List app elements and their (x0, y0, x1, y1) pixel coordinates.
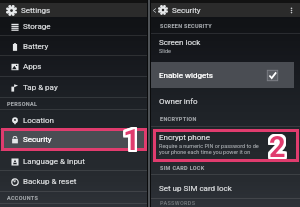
staticText: SCREEN SECURITY (160, 23, 213, 29)
staticText: Security (23, 136, 52, 145)
staticText: ENCRYPTION (160, 116, 197, 122)
staticText: 2 (271, 128, 288, 162)
staticText: 1 (125, 120, 143, 155)
button[interactable]: Back (151, 3, 300, 17)
staticText: Settings (21, 6, 51, 15)
staticText: 1 (121, 122, 139, 157)
staticText: 2 (270, 129, 287, 163)
button[interactable]: Tap & pay (0, 77, 147, 98)
staticText: your phone each time you power it on (159, 149, 251, 155)
staticText: 1 (125, 124, 143, 159)
button[interactable]: Location (0, 110, 147, 131)
staticText: 1 (122, 124, 140, 159)
staticText: Security (23, 135, 52, 144)
button[interactable]: Language & input (0, 151, 147, 172)
staticText: 1 (121, 124, 139, 159)
staticText: Backup & reset (23, 177, 77, 186)
button[interactable]: Settings (0, 3, 147, 17)
staticText: 2 (267, 132, 284, 166)
staticText: 2 (270, 128, 287, 162)
button[interactable]: Apps (0, 56, 147, 77)
staticText: 1 (121, 123, 139, 158)
staticText: Owner info (159, 97, 198, 106)
button[interactable]: Screen lock (151, 35, 300, 60)
staticText: PERSONAL (7, 101, 38, 107)
staticText: 2 (267, 131, 284, 165)
staticText: Apps (23, 62, 42, 71)
staticText: 1 (125, 121, 143, 156)
staticText: 2 (269, 131, 286, 165)
staticText: 2 (270, 132, 287, 166)
staticText: 2 (269, 129, 286, 163)
staticText: SIM CARD LOCK (160, 165, 205, 171)
staticText: Language & input (23, 157, 85, 166)
staticText: 2 (267, 130, 284, 164)
staticText: Location (23, 116, 54, 125)
staticText: 2 (271, 129, 288, 163)
button[interactable]: Battery (0, 36, 147, 57)
staticText: 2 (270, 130, 287, 164)
staticText: 1 (123, 121, 141, 156)
staticText: 2 (267, 128, 284, 162)
staticText: Tap & pay (23, 83, 58, 92)
staticText: 1 (123, 120, 141, 155)
staticText: 2 (268, 130, 285, 164)
staticText: 2 (271, 131, 288, 165)
staticText: 1 (122, 123, 140, 158)
staticText: 2 (268, 132, 285, 166)
staticText: 1 (121, 120, 139, 155)
staticText: 2 (270, 131, 287, 165)
staticText: 2 (268, 129, 285, 163)
staticText: Set up SIM card lock (159, 184, 232, 193)
staticText: 1 (125, 122, 143, 157)
button[interactable]: Owner info (151, 91, 300, 111)
button[interactable]: Backup & reset (0, 171, 147, 192)
staticText: 2 (271, 132, 288, 166)
staticText: Require a numeric PIN or password to de (159, 143, 259, 149)
staticText: 2 (268, 128, 285, 162)
staticText: 1 (123, 123, 141, 158)
staticText: 1 (121, 121, 139, 156)
other: Back (152, 8, 157, 13)
staticText: PASSWORDS (160, 200, 196, 206)
staticText: 1 (125, 123, 143, 158)
staticText: 2 (271, 130, 288, 164)
button[interactable]: Set up SIM card lock (151, 178, 300, 198)
staticText: 2 (269, 132, 286, 166)
staticText: ACCOUNTS (7, 195, 39, 201)
staticText: Security (172, 6, 201, 15)
button[interactable]: Encrypt phone (151, 133, 300, 155)
button[interactable]: Storage (0, 17, 147, 36)
staticText: 1 (122, 120, 140, 155)
staticText: 2 (269, 130, 286, 164)
staticText: 1 (124, 124, 142, 159)
staticText: 2 (269, 128, 286, 162)
staticText: Encrypt phone (159, 133, 210, 142)
staticText: 1 (122, 122, 140, 157)
staticText: 1 (124, 121, 142, 156)
staticText: 1 (123, 122, 141, 157)
staticText: Enable widgets (159, 71, 213, 80)
staticText: Slide (159, 48, 171, 54)
staticText: 1 (122, 121, 140, 156)
staticText: Battery (23, 42, 49, 51)
other: More options (287, 6, 296, 15)
staticText: 1 (124, 120, 142, 155)
button[interactable]: Enable widgets (151, 62, 294, 88)
button[interactable]: Security (0, 130, 147, 151)
staticText: 1 (124, 123, 142, 158)
staticText: 2 (268, 131, 285, 165)
staticText: 2 (267, 129, 284, 163)
staticText: Screen lock (159, 38, 201, 47)
staticText: Storage (23, 22, 51, 31)
button[interactable]: Security (4, 131, 144, 148)
staticText: 1 (123, 124, 141, 159)
staticText: 1 (124, 122, 142, 157)
